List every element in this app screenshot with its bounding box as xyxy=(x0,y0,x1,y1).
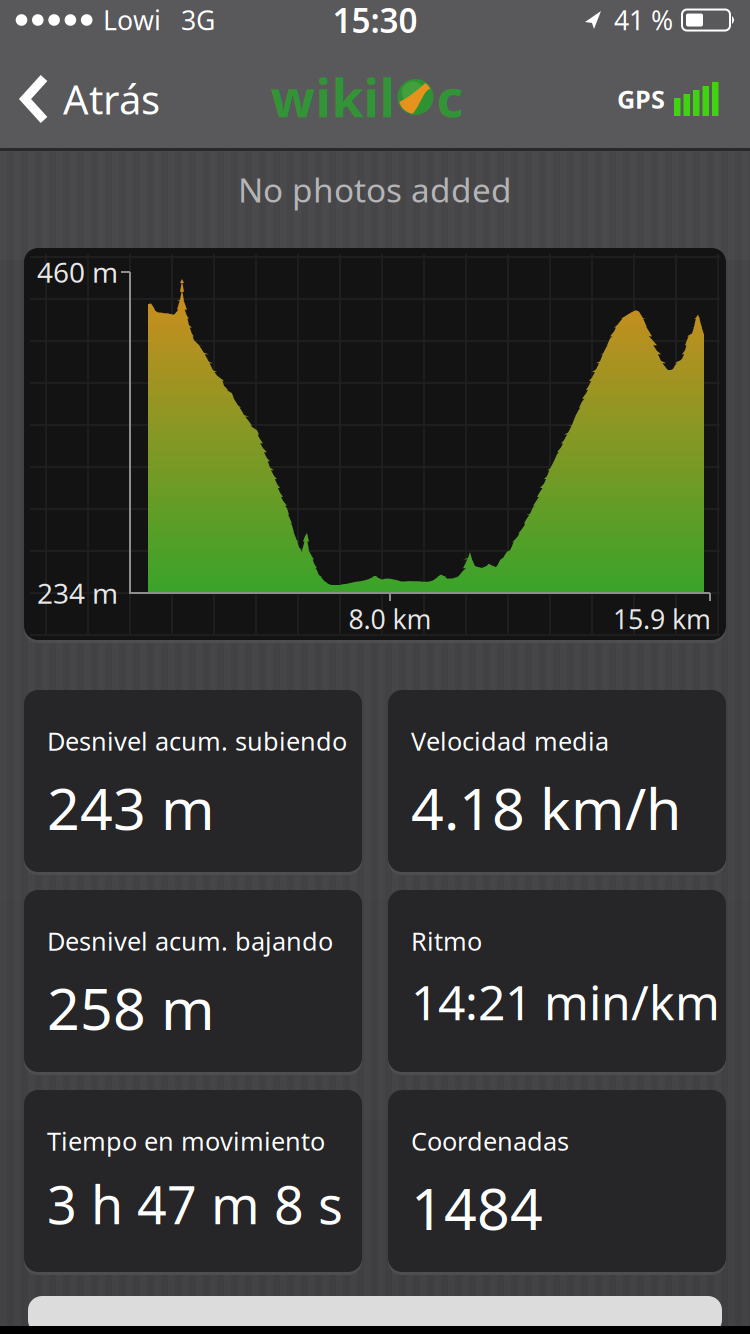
staticText: c xyxy=(436,62,463,132)
staticText: Lowi xyxy=(103,2,161,38)
staticText: 1484 xyxy=(411,1170,543,1246)
staticText: 258 m xyxy=(47,970,215,1046)
staticText: 14:21 min/km xyxy=(411,970,720,1033)
staticText: Desnivel acum. bajando xyxy=(47,924,333,958)
button[interactable]: Atrás xyxy=(0,72,160,125)
staticText: 3G xyxy=(181,2,215,38)
staticText: No photos added xyxy=(238,167,512,212)
staticText: 3 h 47 m 8 s xyxy=(47,1170,343,1239)
staticText: 15.9 km xyxy=(613,601,711,637)
staticText: Tiempo en movimiento xyxy=(47,1124,325,1158)
staticText: 15:30 xyxy=(332,0,417,42)
staticText: 243 m xyxy=(47,770,215,846)
staticText: Desnivel acum. subiendo xyxy=(47,724,347,758)
staticText: Velocidad media xyxy=(411,724,609,758)
staticText: GPS xyxy=(617,82,665,116)
staticText: Atrás xyxy=(63,72,160,125)
staticText: Ritmo xyxy=(411,924,482,958)
staticText: 4.18 km/h xyxy=(411,770,681,846)
button[interactable]: Más opciones xyxy=(28,1296,722,1334)
staticText: 41 % xyxy=(614,2,673,38)
staticText: 234 m xyxy=(37,574,118,612)
staticText: 460 m xyxy=(37,253,118,291)
staticText: Coordenadas xyxy=(411,1124,569,1158)
staticText: wikil xyxy=(270,62,394,132)
staticText: 8.0 km xyxy=(348,601,431,637)
